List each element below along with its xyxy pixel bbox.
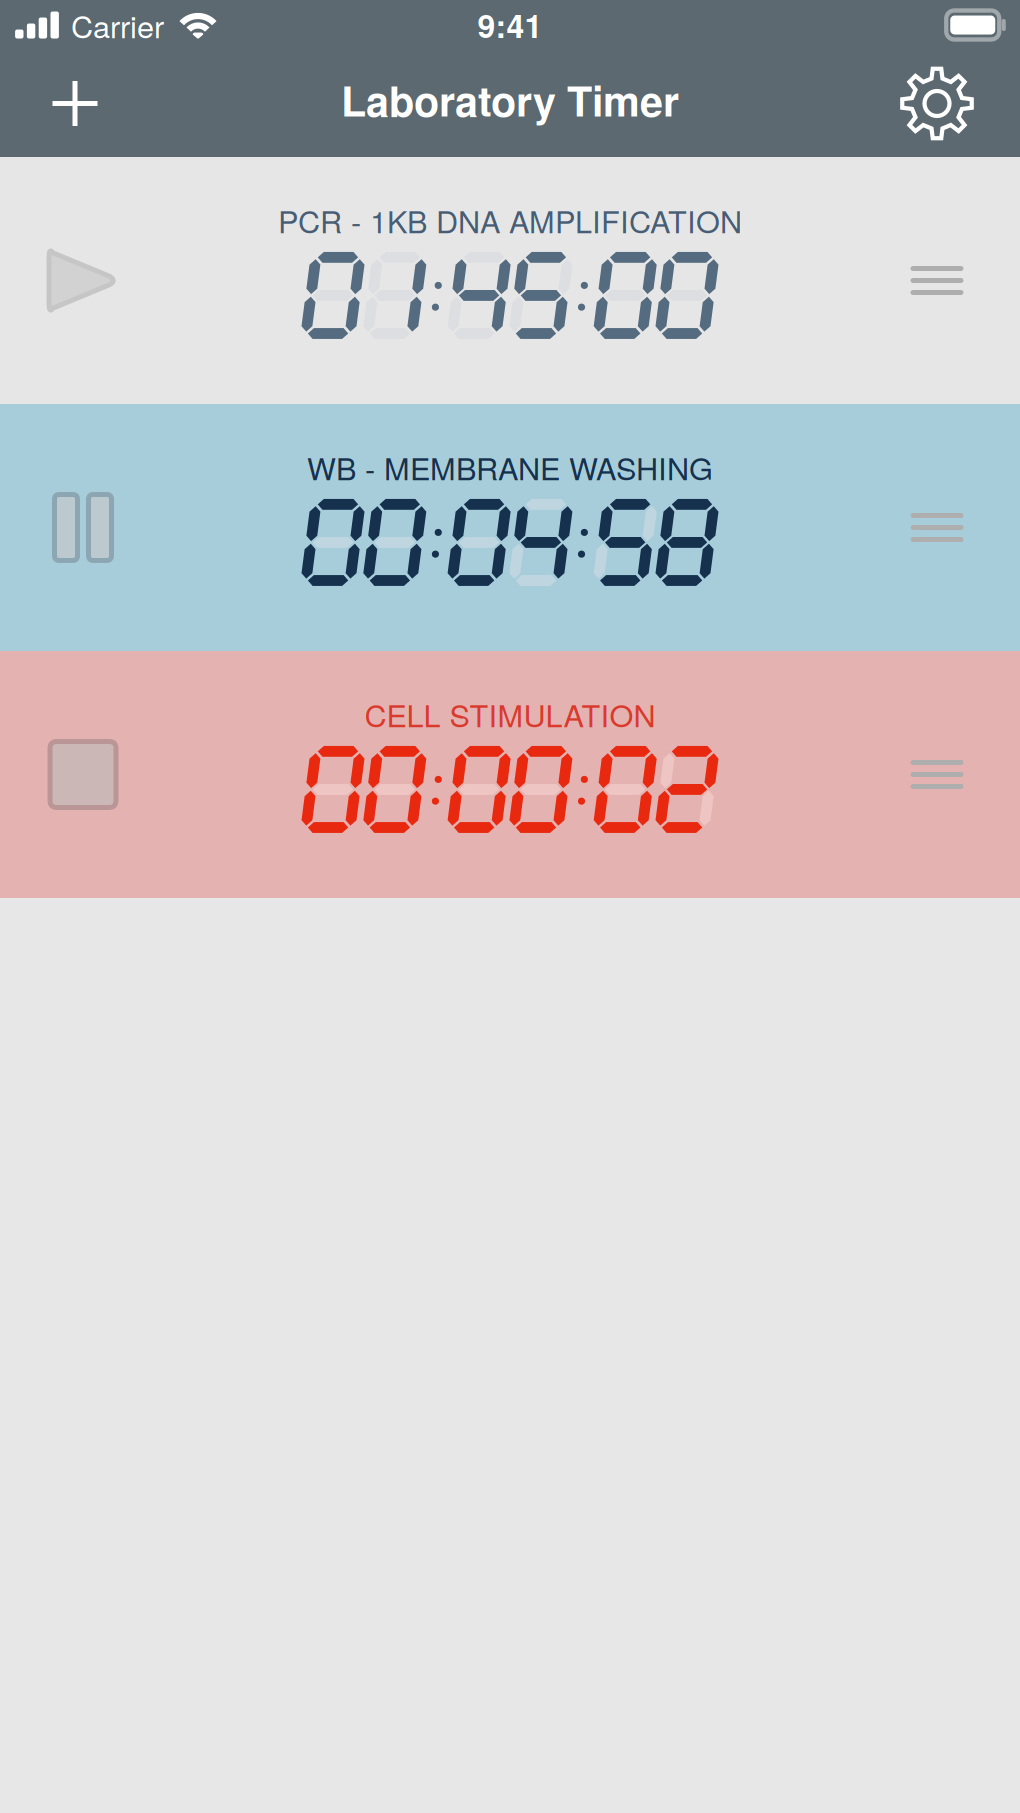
staticText: Carrier bbox=[71, 3, 164, 47]
button[interactable]: Add timer bbox=[0, 53, 150, 153]
button[interactable]: Toggle timer bbox=[0, 404, 166, 651]
staticText: 9:41 bbox=[477, 2, 542, 48]
staticText: WB - MEMBRANE WASHING bbox=[307, 445, 713, 489]
staticText: PCR - 1KB DNA AMPLIFICATION bbox=[278, 198, 742, 242]
button[interactable]: Reorder timer bbox=[854, 651, 1020, 898]
button[interactable]: Toggle timer bbox=[0, 651, 166, 898]
staticText: Laboratory Timer bbox=[341, 70, 679, 129]
button[interactable]: Reorder timer bbox=[854, 157, 1020, 404]
button[interactable]: Settings bbox=[854, 53, 1020, 153]
button[interactable]: Reorder timer bbox=[854, 404, 1020, 651]
button[interactable]: Toggle timer bbox=[0, 157, 166, 404]
staticText: CELL STIMULATION bbox=[364, 692, 655, 736]
